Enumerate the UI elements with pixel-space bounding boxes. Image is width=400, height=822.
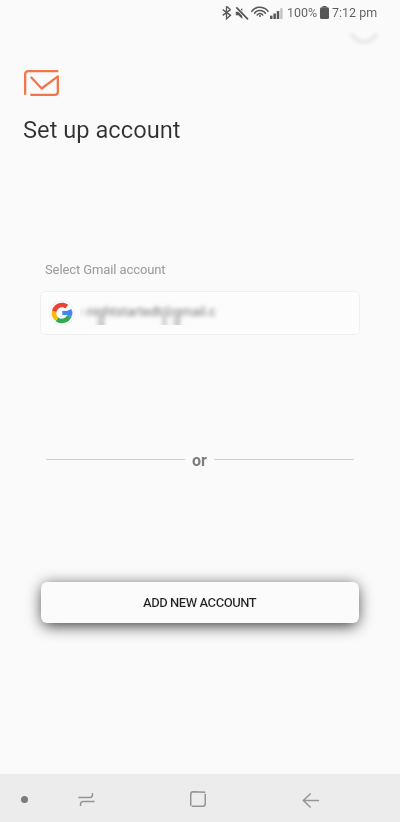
staticText: Select Gmail account [45, 262, 166, 277]
staticText: or [192, 451, 207, 470]
staticText: Set up account [23, 116, 181, 144]
button[interactable]: ADD NEW ACCOUNT [41, 582, 359, 623]
staticText: 7:12 pm [332, 5, 378, 20]
staticText: ADD NEW ACCOUNT [143, 595, 257, 610]
button[interactable]: Recents [56, 774, 116, 822]
staticText: 100% [287, 5, 318, 20]
button[interactable]: Back [281, 774, 341, 822]
button[interactable]: Home [168, 774, 228, 822]
button[interactable]: nightstartedt@gmail.com [40, 291, 360, 335]
staticText: nightstartedt@gmail.com [87, 304, 217, 318]
